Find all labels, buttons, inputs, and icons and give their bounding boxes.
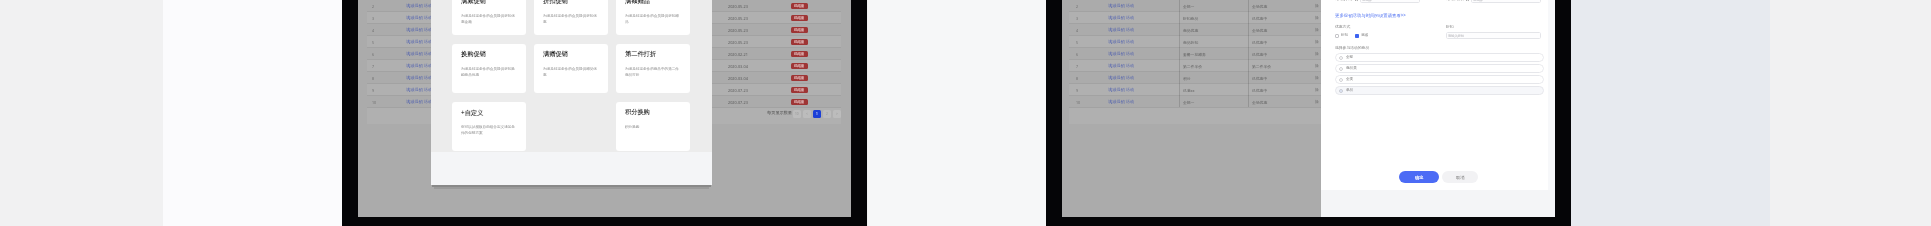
button[interactable]: 满额赠品 — [616, 0, 690, 35]
staticText: 2020-02-21 — [728, 52, 748, 57]
button[interactable] — [1335, 34, 1339, 38]
staticText: 满减促销 活动 — [406, 3, 433, 9]
staticText: 套餐一花赠券 — [1183, 52, 1206, 57]
button[interactable]: 全类 — [1335, 75, 1544, 84]
button[interactable]: 1 — [813, 110, 821, 118]
staticText: 已优惠中 — [1252, 16, 1268, 21]
button[interactable] — [1355, 34, 1359, 38]
staticText: 积分 — [1183, 76, 1191, 81]
button[interactable]: 6 — [1069, 48, 1540, 60]
staticText: 已优惠中 — [1252, 40, 1268, 45]
staticText: 请输入折扣 — [1448, 34, 1464, 38]
staticText: 已结束 — [794, 76, 805, 80]
staticText: 满赠促销 — [543, 50, 568, 58]
staticText: 全部 — [1346, 55, 1354, 60]
staticText: 6 — [1076, 52, 1079, 57]
staticText: 全场优惠 — [1252, 100, 1268, 105]
button[interactable]: 8 — [367, 72, 841, 84]
staticText: 1 — [816, 112, 818, 116]
button[interactable]: 请选择 — [1471, 0, 1541, 3]
staticText: 满减促销 活动 — [406, 39, 433, 45]
staticText: 商品优惠 — [1183, 28, 1199, 33]
staticText: 折扣促销 — [543, 0, 568, 5]
staticText: 满减促销 活动 — [406, 99, 433, 105]
staticText: 第二件半价 — [1183, 64, 1202, 69]
staticText: 2020-07-23 — [728, 88, 748, 93]
staticText: 已结束 — [794, 88, 805, 92]
staticText: 3 — [1076, 16, 1079, 21]
button[interactable]: 6 — [367, 48, 841, 60]
staticText: 请选择 — [1362, 0, 1372, 2]
staticText: 2020-05-23 — [728, 16, 748, 21]
button[interactable]: 全部 — [1335, 53, 1544, 62]
button[interactable]: 2 — [823, 110, 831, 118]
staticText: 操 — [1315, 64, 1319, 69]
staticText: 5 — [372, 40, 375, 45]
staticText: 满减促销 活动 — [1108, 39, 1135, 45]
button[interactable]: 10 — [1069, 96, 1540, 108]
button[interactable]: 满赠促销 — [534, 44, 608, 93]
staticText: 满减促销 — [461, 0, 486, 5]
staticText: 已结束 — [794, 4, 805, 8]
staticText: 9 — [372, 88, 375, 93]
staticText: 满额赠品 — [625, 0, 650, 5]
staticText: 操 — [1315, 100, 1319, 105]
staticText: 请选择 — [1473, 0, 1483, 2]
staticText: 7 — [1076, 64, 1079, 69]
button[interactable]: 7 — [1069, 60, 1540, 72]
staticText: +自定义 — [461, 108, 484, 116]
button[interactable]: 4 — [367, 24, 841, 36]
staticText: 取消 — [1456, 175, 1465, 180]
staticText: 满减促销 活动 — [406, 87, 433, 93]
button[interactable]: 更多促销活动与时间的设置请查看>> — [1335, 12, 1406, 18]
button[interactable]: 7 — [367, 60, 841, 72]
button[interactable]: 取消 — [1442, 171, 1478, 183]
button[interactable]: 8 — [1069, 72, 1540, 84]
button[interactable]: 5 — [367, 36, 841, 48]
button[interactable]: 4 — [1069, 24, 1540, 36]
staticText: 满减促销 活动 — [406, 15, 433, 21]
staticText: 为满足特定条件的会员提供折扣优惠 — [543, 14, 600, 24]
button[interactable]: 确定 — [1399, 171, 1439, 183]
staticText: 为满足特定条件的商品中的第二件商品打折 — [625, 67, 682, 77]
staticText: 每页显示数量 — [767, 110, 793, 115]
staticText: 优惠方式 — [1335, 24, 1351, 29]
button[interactable]: 请输入折扣 — [1446, 32, 1541, 39]
button[interactable]: +自定义 — [452, 102, 526, 151]
button[interactable]: 第二件打折 — [616, 44, 690, 93]
staticText: 已结束 — [794, 28, 805, 32]
staticText: 折扣商品 — [1183, 16, 1199, 21]
button[interactable]: 请选择 — [1360, 0, 1420, 3]
button[interactable]: 积分换购 — [616, 102, 690, 151]
staticText: 满减 — [1361, 33, 1369, 38]
staticText: 满减促销 活动 — [1108, 87, 1135, 93]
staticText: 全场优惠 — [1252, 4, 1268, 9]
staticText: 全部一 — [1183, 4, 1195, 9]
button[interactable]: 2 — [1069, 0, 1540, 12]
staticText: 已优惠中 — [1252, 52, 1268, 57]
button[interactable]: 满减促销 — [452, 0, 526, 35]
button[interactable]: 商品类 — [1335, 64, 1544, 73]
staticText: 满减促销 活动 — [406, 27, 433, 33]
button[interactable]: 3 — [367, 12, 841, 24]
button[interactable]: 2 — [367, 0, 841, 12]
button[interactable]: 9 — [367, 84, 841, 96]
button[interactable]: 换购促销 — [452, 44, 526, 93]
button[interactable]: 5 — [1069, 36, 1540, 48]
staticText: 满减促销 活动 — [1108, 99, 1135, 105]
staticText: 2020-03-04 — [728, 76, 748, 81]
staticText: 为满足特定条件的会员提供赠品优惠 — [543, 67, 600, 77]
staticText: 已结束 — [794, 52, 805, 56]
staticText: 积分换购 — [625, 125, 640, 130]
button[interactable]: 10 — [793, 110, 801, 118]
button[interactable]: 10 — [367, 96, 841, 108]
staticText: 10 — [1076, 100, 1081, 105]
staticText: 5 — [1076, 40, 1079, 45]
staticText: 更多促销活动与时间的设置请查看>> — [1335, 12, 1406, 18]
button[interactable]: 单品 — [1335, 86, 1544, 95]
button[interactable]: 9 — [1069, 84, 1540, 96]
button[interactable]: 折扣促销 — [534, 0, 608, 35]
button[interactable]: 3 — [1069, 12, 1540, 24]
